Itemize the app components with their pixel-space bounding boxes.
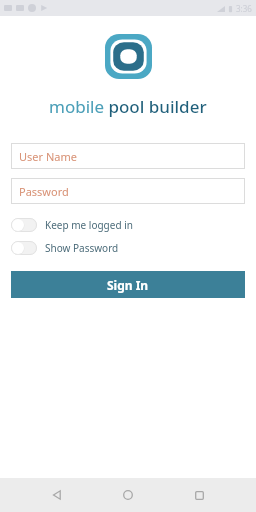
staticText: Sign In [107,277,149,293]
button[interactable]: Back [44,482,70,508]
button[interactable]: Sign In [11,271,245,298]
button[interactable]: Show Password [11,238,245,258]
staticText: Show Password [45,241,119,255]
button[interactable]: Recent apps [186,482,212,508]
staticText: mobile pool builder [49,95,207,118]
button[interactable]: Keep me logged in [11,215,245,235]
staticText: User Name [19,149,77,164]
button[interactable]: Password [11,178,245,204]
staticText: Password [19,184,69,199]
staticText: 3:36 [236,3,252,14]
staticText: Keep me logged in [45,218,133,232]
button[interactable]: Home [115,482,141,508]
button[interactable]: User Name [11,143,245,169]
